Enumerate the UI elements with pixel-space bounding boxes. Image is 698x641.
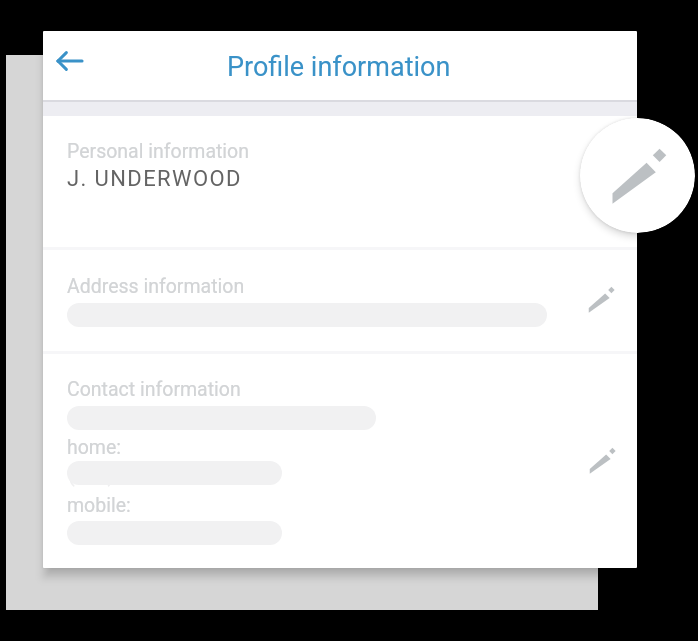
button[interactable]: Personal information (43, 116, 637, 247)
button[interactable]: Edit profile (580, 118, 695, 233)
staticText: home: (67, 436, 122, 459)
staticText: mobile: (67, 494, 131, 517)
staticText: Address information (67, 275, 245, 298)
staticText: (000) 000-0000 (68, 464, 202, 487)
staticText: Profile information (227, 51, 451, 83)
button[interactable]: Address information (43, 250, 637, 351)
staticText: J. UNDERWOOD (67, 166, 242, 192)
button[interactable]: Navigate back (46, 37, 94, 85)
button[interactable]: Contact information (43, 354, 637, 568)
staticText: Personal information (67, 140, 250, 163)
staticText: Contact information (67, 378, 241, 401)
